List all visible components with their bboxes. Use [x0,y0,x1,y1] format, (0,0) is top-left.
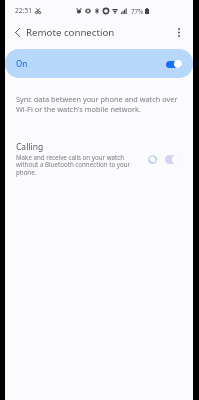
button[interactable]: More options [170,23,188,41]
staticText: 77% [131,7,144,15]
staticText: Make and receive calls on your watch wit… [16,153,132,177]
button[interactable]: Navigate up [7,23,27,41]
button[interactable]: Calling [5,141,193,177]
staticText: On [16,58,28,69]
staticText: Remote connection [26,26,115,39]
staticText: 22:51 [15,6,33,15]
staticText: Sync data between your phone and watch o… [16,94,181,114]
staticText: Calling [16,141,44,153]
button[interactable]: On [5,49,193,78]
